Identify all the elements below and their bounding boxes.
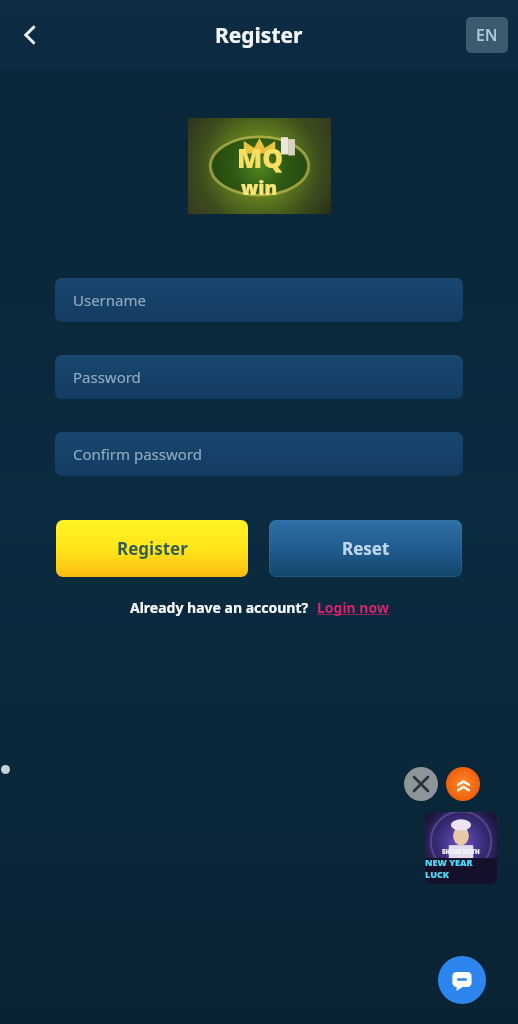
- button[interactable]: Confirm password: [55, 432, 463, 476]
- staticText: MQ: [237, 140, 283, 175]
- button[interactable]: Back: [6, 11, 54, 59]
- button[interactable]: Password: [55, 355, 463, 399]
- staticText: Reset: [342, 537, 390, 560]
- button[interactable]: Register: [56, 520, 248, 577]
- button[interactable]: Chat support: [438, 956, 486, 1004]
- staticText: Password: [73, 367, 141, 387]
- staticText: Register: [215, 21, 303, 50]
- button[interactable]: Login now: [317, 598, 389, 617]
- button[interactable]: Close: [404, 767, 438, 801]
- staticText: Register: [117, 537, 188, 560]
- staticText: SHINE WITH: [442, 848, 480, 856]
- staticText: Already have an account?: [130, 598, 309, 617]
- staticText: Confirm password: [73, 444, 202, 464]
- button[interactable]: Scroll to top: [446, 767, 480, 801]
- staticText: win: [241, 175, 278, 201]
- button[interactable]: Username: [55, 278, 463, 322]
- staticText: NEW YEAR LUCK: [425, 856, 497, 880]
- staticText: EN: [476, 24, 498, 46]
- button[interactable]: New Year Luck promotion: [425, 812, 497, 884]
- button[interactable]: EN: [466, 17, 508, 53]
- button[interactable]: Reset: [269, 520, 462, 577]
- staticText: Login now: [317, 598, 389, 617]
- staticText: Username: [73, 290, 146, 310]
